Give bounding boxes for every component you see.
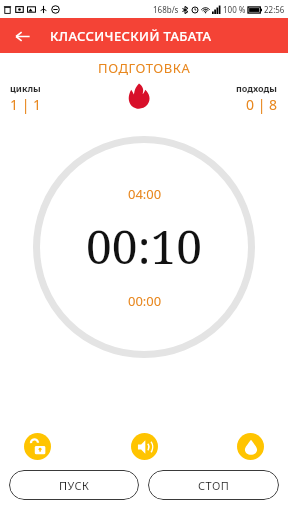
button[interactable]: СТОП <box>148 470 279 500</box>
button[interactable]: Back <box>6 20 38 52</box>
staticText: 1 | 1 <box>10 95 42 114</box>
staticText: КЛАССИЧЕСКИЙ ТАБАТА <box>50 27 212 45</box>
staticText: подходы <box>236 82 278 94</box>
staticText: 04:00 <box>128 185 162 203</box>
staticText: циклы <box>10 82 41 94</box>
staticText: СТОП <box>198 478 230 493</box>
staticText: 00:10 <box>86 215 203 278</box>
staticText: 100 % <box>223 4 246 15</box>
staticText: ПУСК <box>59 478 90 493</box>
button[interactable]: Water <box>237 433 264 460</box>
button[interactable]: Lock <box>24 433 51 460</box>
staticText: 00:00 <box>128 292 162 310</box>
staticText: 22:56 <box>264 4 285 15</box>
staticText: ПОДГОТОВКА <box>98 59 191 77</box>
button[interactable]: ПУСК <box>9 470 139 500</box>
staticText: 168b/s <box>153 4 179 15</box>
staticText: 0 | 8 <box>246 95 278 114</box>
button[interactable]: Sound <box>131 433 158 460</box>
